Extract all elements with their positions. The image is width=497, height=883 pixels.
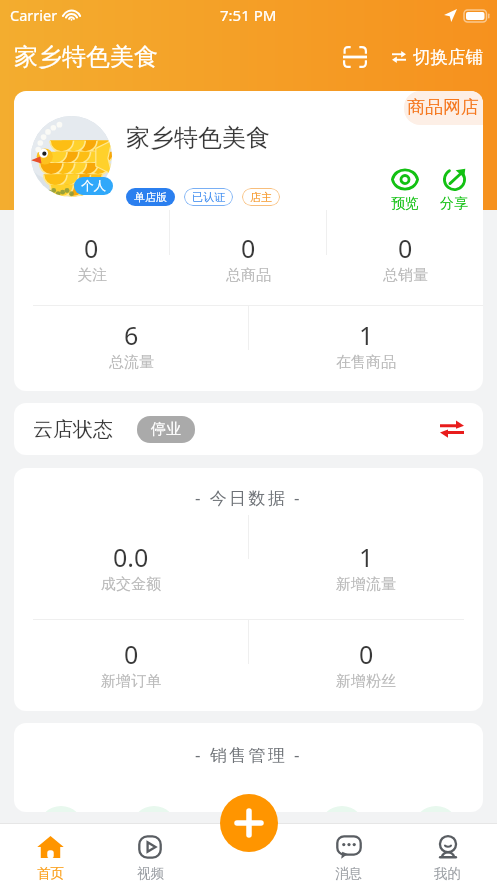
staticText: 预览 — [391, 195, 419, 213]
staticText: 视频 — [137, 865, 164, 882]
staticText: 切换店铺 — [413, 46, 483, 68]
button[interactable]: 0 — [14, 210, 169, 305]
staticText: - 销售管理 - — [14, 743, 483, 766]
button[interactable]: 首页 — [0, 823, 100, 883]
staticText: 分享 — [440, 195, 468, 213]
staticText: 已认证 — [192, 190, 225, 204]
button[interactable]: 添加 — [220, 794, 278, 852]
button[interactable]: 预览 — [389, 168, 421, 213]
staticText: - 今日数据 - — [14, 486, 483, 509]
button[interactable]: 扫一扫 — [340, 42, 370, 72]
button[interactable]: 消息 — [299, 823, 398, 883]
button[interactable]: 视频 — [100, 823, 200, 883]
staticText: 单店版 — [134, 190, 167, 204]
staticText: 0 — [359, 637, 374, 671]
staticText: 0 — [84, 231, 99, 265]
staticText: 新增流量 — [336, 575, 396, 594]
staticText: 商品网店 — [407, 96, 479, 119]
staticText: 1 — [359, 318, 374, 352]
staticText: 总流量 — [109, 353, 154, 372]
button[interactable]: 切换店铺 — [392, 46, 483, 68]
staticText: 7:51 PM — [220, 5, 277, 25]
staticText: 总商品 — [226, 266, 271, 285]
staticText: 家乡特色美食 — [14, 42, 158, 72]
staticText: 1 — [359, 540, 374, 574]
staticText: 新增粉丝 — [336, 672, 396, 691]
button[interactable]: 0 — [170, 210, 326, 305]
button[interactable]: 1 — [249, 515, 483, 619]
staticText: 店主 — [250, 190, 272, 204]
staticText: 0 — [241, 231, 256, 265]
staticText: 0.0 — [113, 540, 149, 574]
staticText: 0 — [124, 637, 139, 671]
staticText: 关注 — [77, 266, 107, 285]
button[interactable]: 0 — [14, 620, 248, 707]
staticText: 0 — [398, 231, 413, 265]
staticText: Carrier — [10, 5, 58, 25]
button[interactable]: 0 — [327, 210, 483, 305]
button[interactable]: 切换营业状态 — [437, 414, 467, 444]
button[interactable]: 单店版 — [126, 188, 175, 206]
button[interactable]: 6 — [14, 306, 248, 384]
button[interactable]: 已认证 — [184, 188, 233, 206]
staticText: 成交金额 — [101, 575, 161, 594]
button[interactable]: 1 — [249, 306, 483, 384]
staticText: 总销量 — [383, 266, 428, 285]
button[interactable]: 我的 — [398, 823, 497, 883]
staticText: 消息 — [335, 865, 362, 882]
staticText: 在售商品 — [336, 353, 396, 372]
staticText: 6 — [124, 318, 139, 352]
staticText: 首页 — [37, 865, 64, 882]
staticText: 云店状态 — [33, 417, 113, 442]
staticText: 我的 — [434, 865, 461, 882]
staticText: 个人 — [81, 178, 106, 194]
staticText: 新增订单 — [101, 672, 161, 691]
button[interactable]: 停业 — [137, 416, 195, 443]
button[interactable]: 0 — [249, 620, 483, 707]
button[interactable]: 商品网店 — [404, 91, 483, 125]
staticText: 停业 — [151, 420, 181, 439]
button[interactable]: 分享 — [438, 168, 470, 213]
button[interactable]: 店主 — [242, 188, 280, 206]
staticText: 家乡特色美食 — [126, 123, 270, 153]
button[interactable]: 0.0 — [14, 515, 248, 619]
